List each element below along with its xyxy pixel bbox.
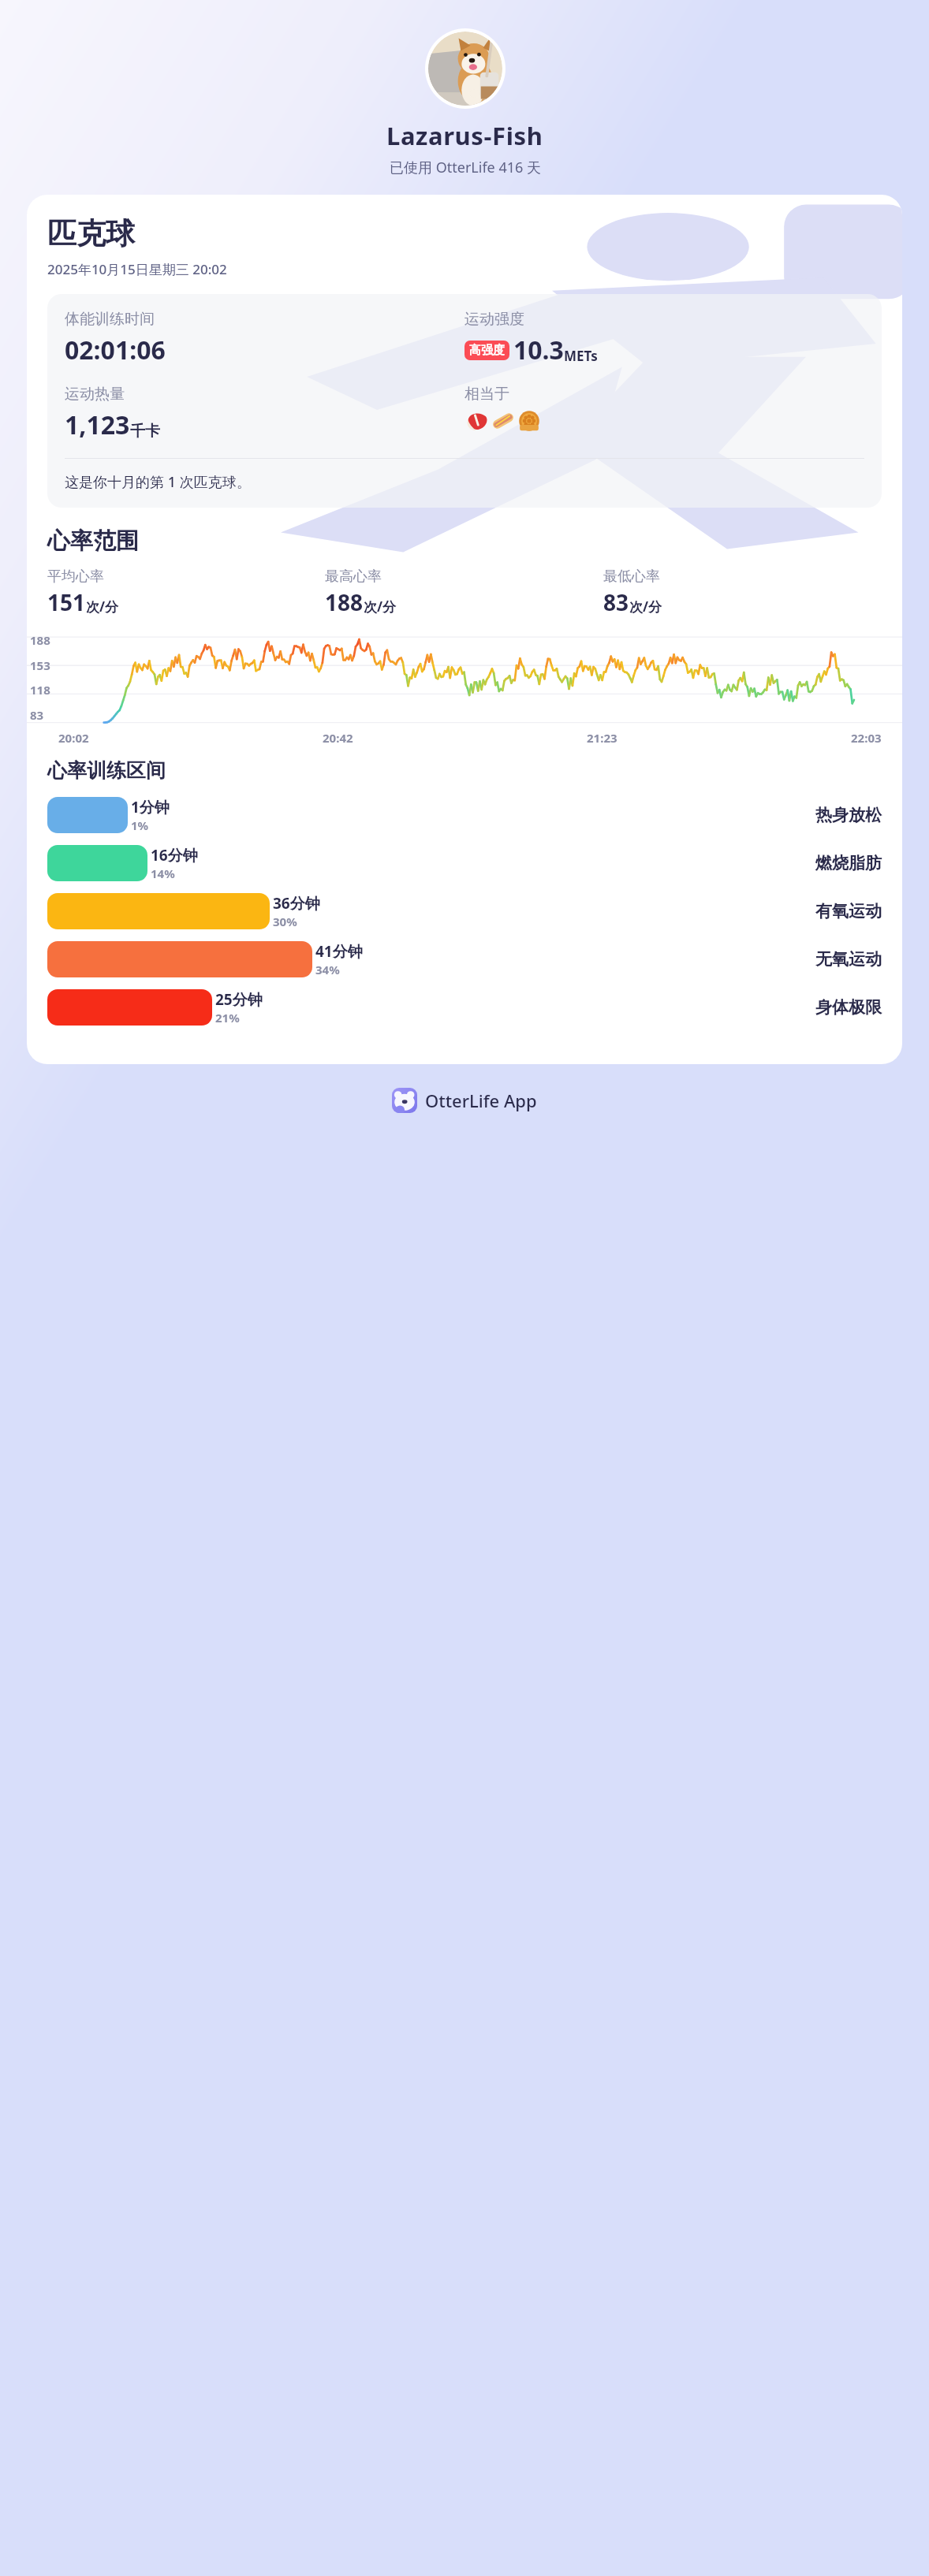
staticText: 2025年10月15日星期三 20:02 [47,260,227,278]
staticText: Lazarus-Fish [386,119,543,152]
staticText: 已使用 OtterLife 416 天 [390,158,541,177]
button[interactable]: 1分钟 [47,795,882,835]
staticText: 高强度 [469,343,505,358]
staticText: 20:42 [323,730,353,746]
staticText: 匹克球 [47,215,135,252]
staticText: 16分钟 [151,845,198,865]
button[interactable]: 41分钟 [47,940,882,979]
staticText: 心率范围 [47,527,139,556]
button[interactable]: 36分钟 [47,892,882,931]
staticText: 1,123 [65,408,130,442]
staticText: 身体极限 [815,997,882,1018]
staticText: 118 [30,682,50,698]
staticText: METs [564,347,598,365]
staticText: 平均心率 [47,568,104,586]
staticText: 188 [325,587,364,617]
staticText: 相当于 [464,385,509,404]
staticText: OtterLife App [425,1089,537,1112]
staticText: 无氧运动 [815,949,882,970]
staticText: 151 [47,587,86,617]
staticText: 25分钟 [215,989,263,1010]
staticText: 次/分 [629,597,662,616]
button[interactable]: Profile photo [428,32,502,106]
staticText: 22:03 [851,730,882,746]
staticText: 运动强度 [464,310,524,329]
staticText: 153 [30,657,50,673]
staticText: 次/分 [86,597,119,616]
staticText: 1分钟 [131,797,170,817]
staticText: 体能训练时间 [65,310,155,329]
staticText: 运动热量 [65,385,125,404]
staticText: 20:02 [58,730,89,746]
staticText: 次/分 [364,597,397,616]
staticText: 最高心率 [325,568,382,586]
staticText: 83 [603,587,629,617]
staticText: 14% [151,865,175,881]
staticText: 30% [273,914,297,929]
staticText: 心率训练区间 [47,758,166,783]
staticText: 188 [30,632,50,648]
staticText: 21:23 [587,730,617,746]
button[interactable]: 16分钟 [47,843,882,883]
staticText: 36分钟 [273,893,320,914]
staticText: 燃烧脂肪 [815,853,882,873]
staticText: 有氧运动 [815,901,882,921]
staticText: 这是你十月的第 1 次匹克球。 [65,472,251,492]
staticText: 千卡 [130,422,160,441]
staticText: 83 [30,707,44,723]
staticText: 最低心率 [603,568,660,586]
staticText: 10.3 [513,333,564,367]
other: OtterLife logo [392,1088,417,1113]
button[interactable]: OtterLife logo [392,1088,537,1113]
button[interactable]: 25分钟 [47,988,882,1027]
staticText: 热身放松 [815,805,882,825]
staticText: 34% [315,962,340,977]
staticText: 41分钟 [315,941,363,962]
staticText: 02:01:06 [65,333,166,367]
staticText: 21% [215,1010,240,1026]
staticText: 1% [131,817,149,833]
